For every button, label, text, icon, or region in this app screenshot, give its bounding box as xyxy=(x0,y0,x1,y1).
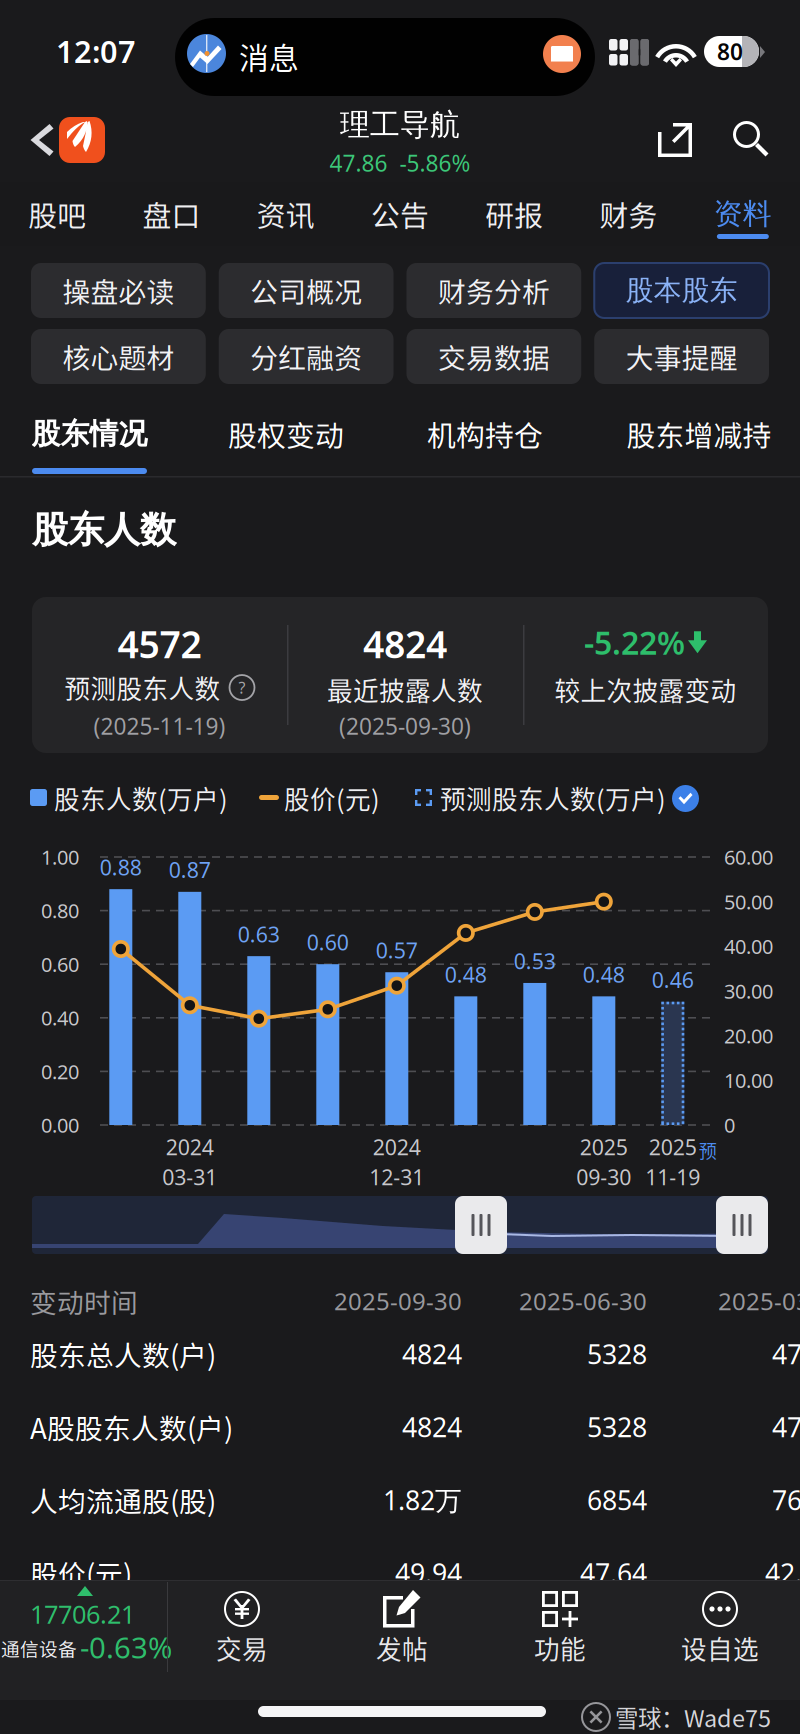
staticText: 09-30 xyxy=(576,1163,631,1191)
staticText: 47.64 xyxy=(580,1555,647,1591)
button[interactable]: Search xyxy=(0,0,70,70)
staticText: 消息 xyxy=(239,34,299,78)
staticText: 操盘必读 xyxy=(62,270,174,311)
button[interactable]: 公告 xyxy=(343,182,457,246)
staticText: 分红融资 xyxy=(250,336,362,377)
staticText: 0.88 xyxy=(100,853,142,881)
staticText: 交易 xyxy=(216,1629,268,1667)
staticText: 0.63 xyxy=(238,920,280,948)
staticText: 研报 xyxy=(485,193,543,235)
staticText: 股东人数(万户) xyxy=(54,779,228,817)
staticText: 机构持仓 xyxy=(427,413,543,455)
staticText: 财务 xyxy=(600,193,658,235)
button[interactable]: 财务分析 xyxy=(406,263,581,318)
staticText: 17706.21 xyxy=(30,1597,135,1631)
staticText: 1.82万 xyxy=(383,1482,462,1518)
button[interactable]: 资讯 xyxy=(229,182,343,246)
button[interactable]: 股权变动 xyxy=(0,400,200,478)
staticText: 5328 xyxy=(587,1336,647,1372)
staticText: 财务分析 xyxy=(438,270,550,311)
staticText: 预测股东人数 xyxy=(64,669,220,706)
staticText: 7624 xyxy=(772,1482,800,1518)
staticText: 2025 xyxy=(649,1133,697,1161)
button[interactable]: 研报 xyxy=(457,182,571,246)
staticText: 12-31 xyxy=(369,1163,424,1191)
staticText: 变动时间 xyxy=(30,1282,138,1320)
staticText: 股东情况 xyxy=(31,416,147,452)
staticText: 12:07 xyxy=(56,31,136,71)
staticText: 03-31 xyxy=(162,1163,217,1191)
button[interactable]: 盘口 xyxy=(114,182,229,246)
staticText: 2024 xyxy=(166,1133,214,1161)
button[interactable]: 股东情况 xyxy=(0,400,200,478)
staticText: 4824 xyxy=(363,619,447,669)
staticText: 最近披露人数 xyxy=(327,671,483,708)
staticText: 股权变动 xyxy=(228,413,344,455)
button[interactable]: 大事提醒 xyxy=(594,329,769,384)
staticText: 0.57 xyxy=(376,936,418,964)
staticText: 资讯 xyxy=(257,193,315,235)
staticText: 交易数据 xyxy=(438,336,550,377)
staticText: 6854 xyxy=(587,1482,647,1518)
button[interactable]: 操盘必读 xyxy=(31,263,206,318)
button[interactable]: 公司概况 xyxy=(219,263,394,318)
staticText: 80 xyxy=(717,36,743,66)
staticText: 公告 xyxy=(371,193,429,235)
staticText: 股价(元) xyxy=(30,1553,132,1593)
staticText: 47.86 -5.86% xyxy=(329,148,470,178)
button[interactable]: 发帖 xyxy=(0,1580,150,1700)
staticText: 设自选 xyxy=(681,1629,759,1667)
staticText: 0.00 xyxy=(41,1112,79,1138)
staticText: 0.60 xyxy=(41,951,79,977)
button[interactable]: 机构持仓 xyxy=(0,400,200,478)
button[interactable]: 设自选 xyxy=(0,1580,150,1700)
staticText: 1.00 xyxy=(41,844,79,870)
staticText: 0.46 xyxy=(652,966,694,994)
staticText: 功能 xyxy=(534,1629,586,1667)
staticText: 0.60 xyxy=(307,928,349,956)
staticText: (2025-09-30) xyxy=(339,711,471,741)
button[interactable]: Share xyxy=(0,0,70,70)
button[interactable]: 交易数据 xyxy=(406,329,581,384)
staticText: -0.63% xyxy=(80,1627,172,1666)
staticText: A股股东人数(户) xyxy=(30,1407,233,1447)
staticText: 50.00 xyxy=(724,888,773,915)
staticText: 4824 xyxy=(402,1409,462,1445)
staticText: 0.80 xyxy=(41,897,79,924)
staticText: 40.00 xyxy=(724,933,773,960)
staticText: 0 xyxy=(724,1112,735,1138)
staticText: 股东人数 xyxy=(32,507,176,553)
staticText: 预 xyxy=(699,1137,717,1163)
staticText: 公司概况 xyxy=(250,270,362,311)
staticText: 4790 xyxy=(772,1336,800,1372)
staticText: 2025-06-30 xyxy=(519,1285,647,1317)
staticText: 2025 xyxy=(580,1133,628,1161)
button[interactable]: 股本股东 xyxy=(594,263,769,318)
staticText: 60.00 xyxy=(724,844,773,870)
staticText: 0.40 xyxy=(41,1004,79,1031)
staticText: 20.00 xyxy=(724,1022,773,1049)
button[interactable]: 股东增减持 xyxy=(0,400,200,478)
staticText: 盘口 xyxy=(142,193,200,235)
staticText: 资料 xyxy=(714,196,772,232)
staticText: 4790 xyxy=(772,1409,800,1445)
button[interactable]: 分红融资 xyxy=(219,329,394,384)
staticText: 11-19 xyxy=(645,1163,700,1191)
button[interactable]: 股吧 xyxy=(0,182,114,246)
staticText: 0.48 xyxy=(583,960,625,988)
staticText: 通信设备 xyxy=(1,1634,77,1661)
button[interactable]: 核心题材 xyxy=(31,329,206,384)
staticText: 4572 xyxy=(117,619,201,669)
button[interactable]: 交易 xyxy=(0,1580,150,1700)
staticText: ? xyxy=(238,677,245,698)
staticText: 股东增减持 xyxy=(626,413,771,455)
button[interactable]: 财务 xyxy=(571,182,686,246)
staticText: 10.00 xyxy=(724,1067,773,1094)
button[interactable]: 功能 xyxy=(0,1580,150,1700)
staticText: -5.22% xyxy=(584,621,685,663)
button[interactable]: 资料 xyxy=(686,182,800,246)
staticText: 0.20 xyxy=(41,1058,79,1085)
staticText: 核心题材 xyxy=(62,336,174,377)
staticText: 2024 xyxy=(373,1133,421,1161)
